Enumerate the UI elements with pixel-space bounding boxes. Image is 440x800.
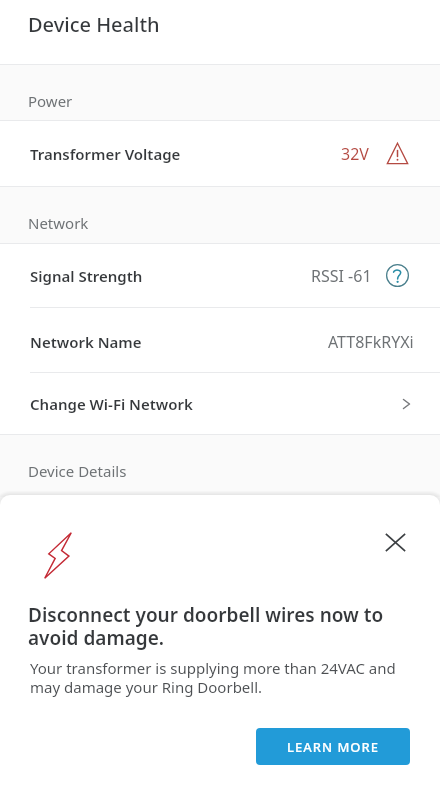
staticText: Change Wi-Fi Network — [30, 394, 193, 414]
staticText: Device Details — [28, 461, 127, 481]
staticText: Disconnect your doorbell wires now to av… — [28, 602, 414, 651]
staticText: Network — [28, 213, 89, 233]
button[interactable]: Change Wi-Fi Network — [0, 373, 440, 434]
staticText: Device Health — [28, 11, 160, 38]
staticText: Your transformer is supplying more than … — [30, 658, 400, 698]
button[interactable]: Network Name — [0, 308, 440, 372]
staticText: Power — [28, 91, 73, 111]
staticText: Signal Strength — [30, 266, 143, 286]
staticText: LEARN MORE — [287, 738, 379, 756]
staticText: 32V — [341, 143, 369, 165]
staticText: Network Name — [30, 332, 142, 352]
button[interactable]: Transformer Voltage — [0, 121, 440, 186]
staticText: RSSI -61 — [311, 265, 372, 287]
staticText: ATT8FkRYXi — [328, 331, 414, 353]
button[interactable]: Signal Strength — [0, 244, 440, 307]
staticText: Transformer Voltage — [30, 144, 181, 164]
button[interactable]: Close — [382, 530, 409, 555]
button[interactable]: LEARN MORE — [256, 728, 410, 765]
